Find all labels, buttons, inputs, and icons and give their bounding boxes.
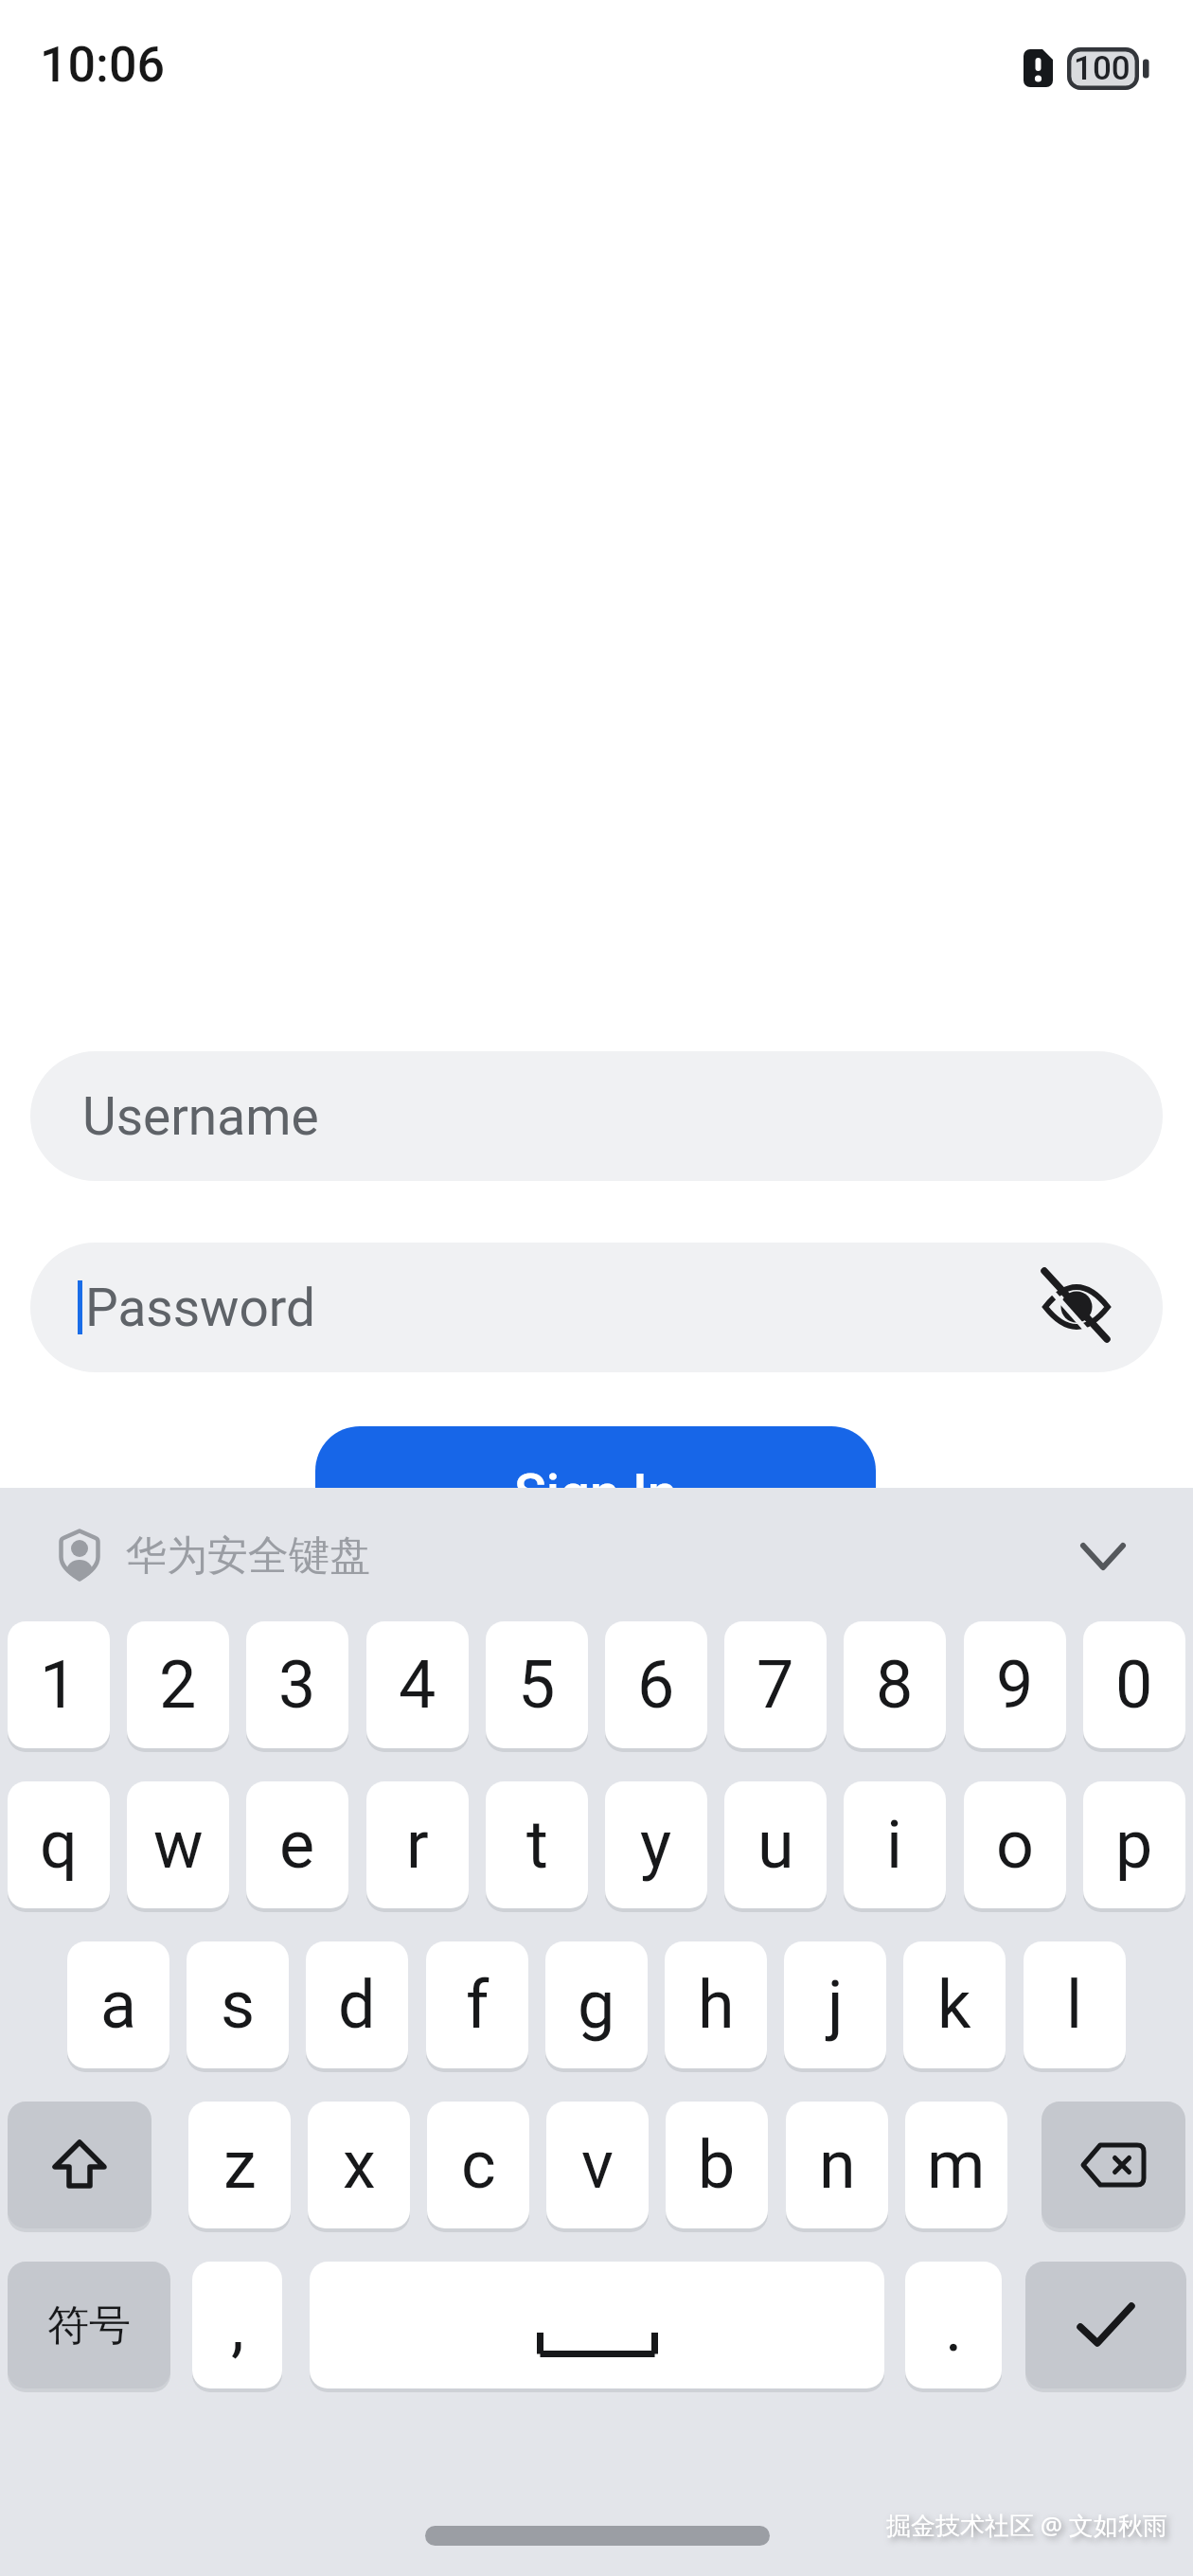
button[interactable]: Password xyxy=(30,1243,1163,1372)
button[interactable]: Sign In xyxy=(315,1426,876,1568)
button[interactable]: . xyxy=(905,2262,1002,2388)
button[interactable]: 0 xyxy=(1083,1621,1185,1748)
staticText: a xyxy=(100,1966,137,2044)
button[interactable]: d xyxy=(306,1941,408,2068)
button[interactable] xyxy=(310,2262,884,2388)
button[interactable]: t xyxy=(486,1781,588,1908)
staticText: , xyxy=(231,2288,244,2366)
button[interactable]: 3 xyxy=(246,1621,348,1748)
staticText: 掘金技术社区 @ 文如秋雨 xyxy=(886,2508,1167,2542)
staticText: 1 xyxy=(40,1646,78,1724)
button[interactable]: j xyxy=(784,1941,886,2068)
staticText: 3 xyxy=(278,1646,316,1724)
staticText: i xyxy=(886,1806,903,1884)
button[interactable] xyxy=(8,2102,151,2228)
staticText: k xyxy=(937,1966,971,2044)
staticText: w xyxy=(153,1806,204,1884)
staticText: c xyxy=(461,2126,496,2204)
staticText: Sign In xyxy=(514,1462,677,1525)
staticText: e xyxy=(279,1806,315,1884)
button[interactable]: 2 xyxy=(127,1621,229,1748)
staticText: q xyxy=(40,1806,78,1884)
button[interactable] xyxy=(1025,2262,1186,2388)
staticText: 4 xyxy=(399,1646,436,1724)
staticText: 9 xyxy=(996,1646,1034,1724)
staticText: 5 xyxy=(518,1646,556,1724)
button[interactable]: g xyxy=(545,1941,648,2068)
staticText: u xyxy=(757,1806,794,1884)
button[interactable]: y xyxy=(605,1781,707,1908)
button[interactable] xyxy=(1042,1275,1111,1337)
staticText: . xyxy=(945,2289,963,2367)
button[interactable]: 6 xyxy=(605,1621,707,1748)
button[interactable]: r xyxy=(366,1781,469,1908)
button[interactable]: v xyxy=(546,2102,649,2228)
staticText: j xyxy=(828,1966,844,2044)
staticText: z xyxy=(223,2126,257,2204)
staticText: 10:06 xyxy=(40,36,166,94)
button[interactable]: x xyxy=(308,2102,410,2228)
staticText: m xyxy=(927,2126,986,2204)
button[interactable]: 7 xyxy=(724,1621,827,1748)
staticText: 7 xyxy=(757,1646,794,1724)
button[interactable]: m xyxy=(905,2102,1007,2228)
button[interactable]: o xyxy=(964,1781,1066,1908)
staticText: 100 xyxy=(1074,49,1131,88)
button[interactable]: 4 xyxy=(366,1621,469,1748)
button[interactable]: , xyxy=(192,2262,282,2388)
button[interactable]: f xyxy=(426,1941,528,2068)
staticText: f xyxy=(466,1966,490,2044)
button[interactable]: z xyxy=(188,2102,291,2228)
button[interactable]: 符号 xyxy=(8,2262,170,2388)
button[interactable]: i xyxy=(844,1781,946,1908)
button[interactable]: n xyxy=(786,2102,888,2228)
button[interactable]: 8 xyxy=(844,1621,946,1748)
button[interactable]: 5 xyxy=(486,1621,588,1748)
staticText: y xyxy=(640,1806,672,1884)
staticText: o xyxy=(996,1806,1034,1884)
button[interactable]: l xyxy=(1024,1941,1126,2068)
staticText: r xyxy=(406,1806,429,1884)
button[interactable]: e xyxy=(246,1781,348,1908)
button[interactable]: 1 xyxy=(8,1621,110,1748)
staticText: p xyxy=(1115,1806,1153,1884)
staticText: 符号 xyxy=(47,2299,131,2352)
staticText: n xyxy=(819,2126,856,2204)
button[interactable]: s xyxy=(187,1941,289,2068)
staticText: h xyxy=(698,1966,735,2044)
button[interactable]: c xyxy=(427,2102,529,2228)
staticText: g xyxy=(578,1966,615,2044)
staticText: 6 xyxy=(637,1646,675,1724)
staticText: Password xyxy=(85,1278,315,1338)
staticText: l xyxy=(1066,1966,1083,2044)
button[interactable]: 9 xyxy=(964,1621,1066,1748)
staticText: d xyxy=(338,1966,376,2044)
button[interactable]: p xyxy=(1083,1781,1185,1908)
staticText: b xyxy=(698,2126,736,2204)
button[interactable]: a xyxy=(67,1941,169,2068)
staticText: 0 xyxy=(1115,1646,1153,1724)
button[interactable]: u xyxy=(724,1781,827,1908)
button[interactable]: b xyxy=(666,2102,768,2228)
button[interactable]: h xyxy=(665,1941,767,2068)
staticText: 8 xyxy=(876,1646,914,1724)
button[interactable] xyxy=(1042,2102,1185,2228)
button[interactable]: q xyxy=(8,1781,110,1908)
staticText: x xyxy=(343,2126,376,2204)
staticText: 2 xyxy=(159,1646,197,1724)
staticText: t xyxy=(526,1806,548,1884)
button[interactable]: k xyxy=(903,1941,1006,2068)
button[interactable]: w xyxy=(127,1781,229,1908)
staticText: Username xyxy=(82,1086,319,1147)
staticText: v xyxy=(581,2126,614,2204)
staticText: s xyxy=(221,1966,256,2044)
button[interactable]: Username xyxy=(30,1051,1163,1181)
staticText: 华为安全键盘 xyxy=(126,1530,370,1582)
button[interactable] xyxy=(1081,1544,1125,1570)
